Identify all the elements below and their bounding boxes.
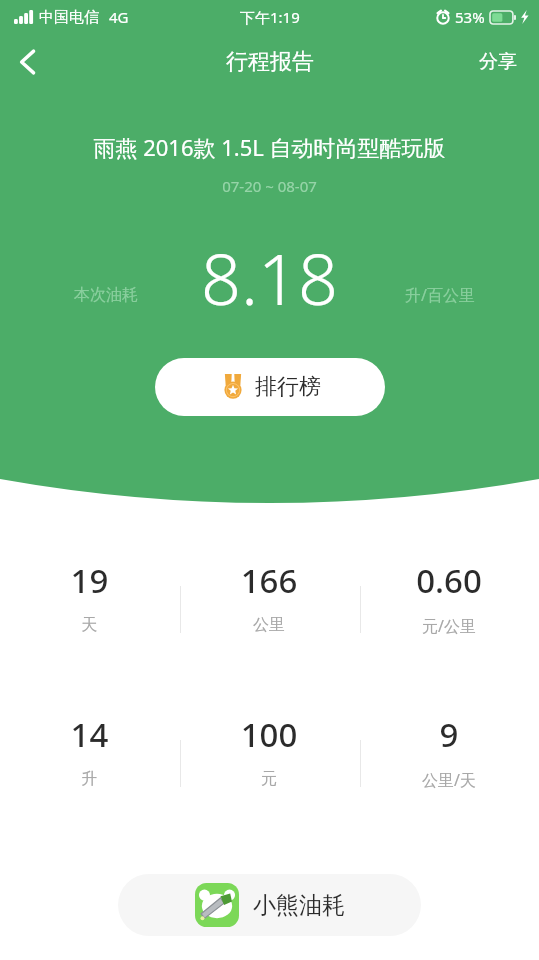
staticText: 分享 (479, 50, 517, 74)
staticText: 元 (179, 769, 359, 789)
button[interactable]: 0.60 (359, 558, 539, 637)
staticText: 53% (455, 7, 485, 27)
staticText: 0.60 (359, 558, 539, 603)
button[interactable]: 分享 (457, 38, 539, 86)
staticText: 雨燕 2016款 1.5L 自动时尚型酷玩版 (0, 132, 539, 162)
staticText: 9 (359, 712, 539, 757)
button[interactable]: 返回 (0, 34, 56, 90)
staticText: 166 (179, 558, 359, 603)
button[interactable]: 小熊油耗 (118, 874, 421, 936)
staticText: 排行榜 (255, 373, 321, 401)
button[interactable]: 9 (359, 712, 539, 791)
staticText: 小熊油耗 (253, 891, 345, 920)
staticText: 19 (0, 558, 179, 603)
staticText: 100 (179, 712, 359, 757)
staticText: 天 (0, 615, 179, 635)
button[interactable]: 100 (179, 712, 359, 789)
button[interactable]: 166 (179, 558, 359, 635)
staticText: 本次油耗 (74, 285, 138, 305)
staticText: 公里/天 (359, 769, 539, 791)
staticText: 元/公里 (359, 615, 539, 637)
button[interactable]: 14 (0, 712, 179, 789)
staticText: 升/百公里 (405, 284, 475, 306)
staticText: 公里 (179, 615, 359, 635)
staticText: 4G (109, 7, 129, 27)
staticText: 升 (0, 769, 179, 789)
staticText: 07-20 ~ 08-07 (0, 176, 539, 196)
staticText: 14 (0, 712, 179, 757)
button[interactable]: 19 (0, 558, 179, 635)
staticText: 8.18 (201, 230, 338, 325)
staticText: 中国电信 (39, 8, 99, 27)
staticText: 下午1:19 (240, 7, 300, 27)
staticText: 行程报告 (226, 48, 314, 76)
button[interactable]: 排行榜 (155, 358, 385, 416)
